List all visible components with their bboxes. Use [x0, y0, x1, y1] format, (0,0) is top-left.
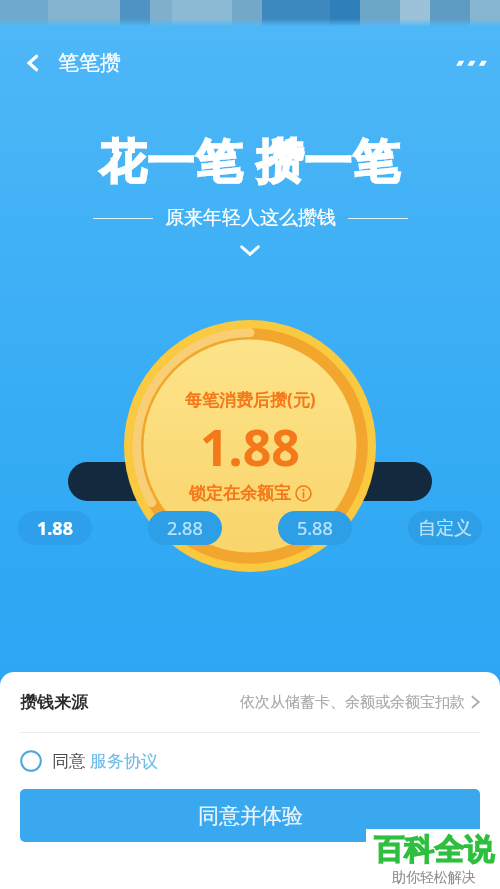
button[interactable]: 5.88 [278, 511, 352, 545]
staticText: 1.88 [37, 516, 73, 541]
button[interactable]: Back [14, 44, 52, 82]
staticText: 锁定在余额宝 [189, 483, 291, 504]
staticText: 2.88 [167, 516, 203, 541]
staticText: 同意并体验 [198, 803, 303, 829]
button[interactable]: 同意并体验 [20, 789, 480, 842]
staticText: 依次从储蓄卡、余额或余额宝扣款 [240, 693, 465, 712]
button[interactable]: More options [446, 41, 490, 85]
staticText: 原来年轻人这么攒钱 [165, 206, 336, 230]
button[interactable]: 同意 [0, 733, 500, 789]
staticText: 百科全说 [374, 831, 494, 869]
staticText: 每笔消费后攒(元) [185, 388, 316, 411]
staticText: 笔笔攒 [58, 50, 121, 76]
staticText: 5.88 [297, 516, 333, 541]
button[interactable]: 2.88 [148, 511, 222, 545]
button[interactable]: Info [295, 485, 312, 502]
button[interactable]: 攒钱来源 [0, 672, 500, 732]
button[interactable]: 自定义 [408, 511, 482, 545]
staticText: 攒钱来源 [20, 692, 88, 713]
staticText: 助你轻松解决 [392, 869, 476, 887]
button[interactable]: 服务协议 [90, 751, 158, 772]
staticText: 花一笔 攒一笔 [99, 128, 401, 192]
staticText: 自定义 [418, 517, 472, 540]
staticText: 同意 [52, 751, 86, 772]
staticText: 1.88 [200, 413, 300, 481]
button[interactable]: 1.88 [18, 511, 92, 545]
